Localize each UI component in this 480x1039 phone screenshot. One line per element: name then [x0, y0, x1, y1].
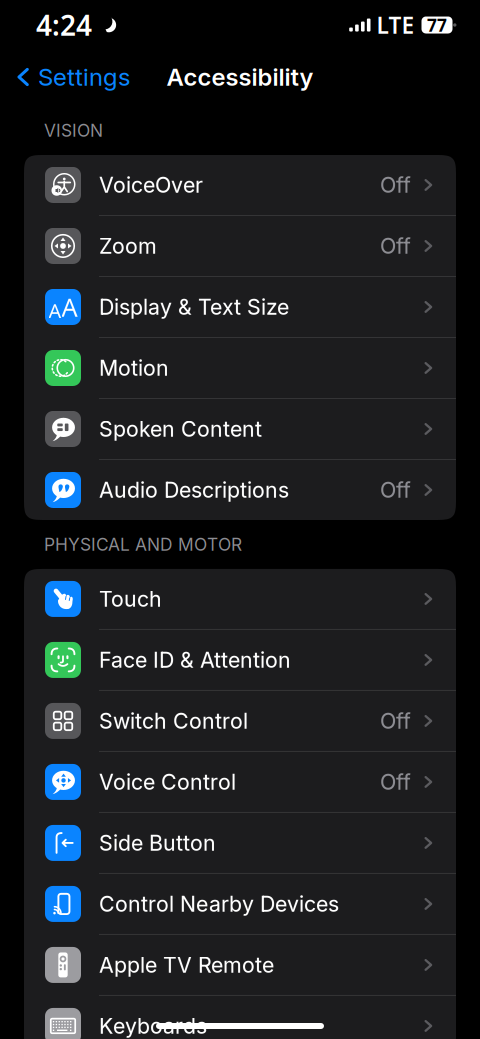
button[interactable]: Motion: [24, 338, 456, 398]
staticText: Switch Control: [99, 708, 248, 734]
staticText: Zoom: [99, 233, 157, 259]
button[interactable]: A: [24, 277, 456, 337]
staticText: A: [48, 297, 61, 324]
staticText: Touch: [99, 586, 162, 612]
staticText: Off: [380, 477, 411, 503]
staticText: Off: [380, 769, 411, 795]
staticText: Spoken Content: [99, 416, 262, 442]
staticText: VISION: [44, 120, 103, 141]
staticText: Display & Text Size: [99, 294, 289, 320]
button[interactable]: Apple TV Remote: [24, 935, 456, 995]
staticText: Off: [380, 708, 411, 734]
staticText: Control Nearby Devices: [99, 891, 339, 917]
button[interactable]: Settings: [0, 50, 142, 104]
button[interactable]: Control Nearby Devices: [24, 874, 456, 934]
button[interactable]: Zoom: [24, 216, 456, 276]
staticText: LTE: [376, 10, 414, 40]
staticText: Side Button: [99, 830, 216, 856]
button[interactable]: Keyboards: [24, 996, 456, 1039]
staticText: Off: [380, 172, 411, 198]
staticText: A: [61, 290, 77, 324]
staticText: 4:24: [36, 6, 92, 44]
staticText: Audio Descriptions: [99, 477, 289, 503]
button[interactable]: VoiceOver: [24, 155, 456, 215]
button[interactable]: Audio Descriptions: [24, 460, 456, 520]
button[interactable]: Side Button: [24, 813, 456, 873]
staticText: Face ID & Attention: [99, 647, 291, 673]
staticText: PHYSICAL AND MOTOR: [44, 534, 242, 555]
staticText: Off: [380, 233, 411, 259]
staticText: Apple TV Remote: [99, 952, 274, 978]
button[interactable]: Touch: [24, 569, 456, 629]
staticText: Motion: [99, 355, 169, 381]
staticText: 77: [427, 13, 447, 36]
staticText: Accessibility: [166, 62, 313, 91]
button[interactable]: Spoken Content: [24, 399, 456, 459]
button[interactable]: Switch Control: [24, 691, 456, 751]
staticText: Voice Control: [99, 769, 236, 795]
staticText: Keyboards: [99, 1013, 207, 1039]
staticText: VoiceOver: [99, 172, 203, 198]
button[interactable]: Face ID & Attention: [24, 630, 456, 690]
button[interactable]: Voice Control: [24, 752, 456, 812]
staticText: Settings: [38, 62, 130, 91]
